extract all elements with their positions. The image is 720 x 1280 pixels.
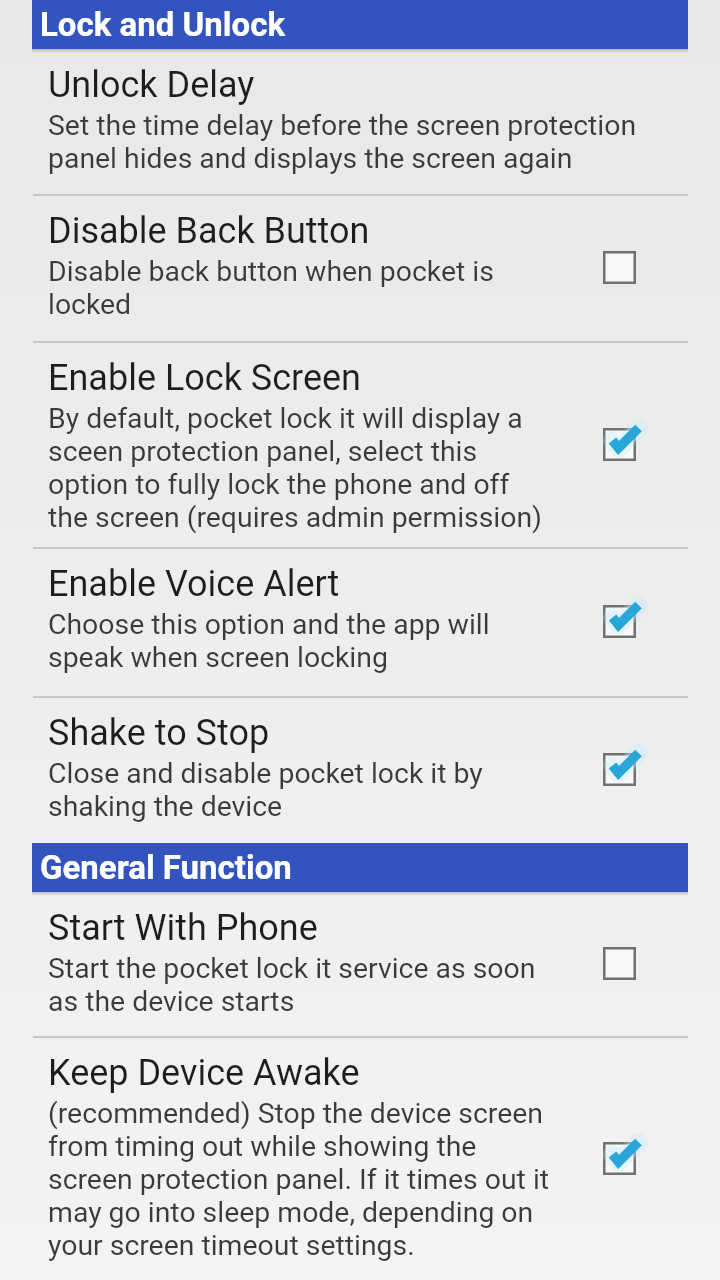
staticText: Set the time delay before the screen pro…	[48, 109, 637, 175]
staticText: Keep Device Awake	[48, 1052, 360, 1094]
button[interactable]	[603, 753, 636, 786]
staticText: Lock and Unlock	[40, 5, 286, 44]
button[interactable]	[603, 947, 636, 980]
staticText: Start the pocket lock it service as soon…	[48, 952, 536, 1018]
staticText: Shake to Stop	[48, 712, 270, 754]
button[interactable]: Unlock Delay	[32, 49, 688, 195]
button[interactable]: Shake to Stop	[32, 697, 688, 843]
button[interactable]: Keep Device Awake	[32, 1037, 688, 1280]
staticText: Disable Back Button	[48, 210, 370, 252]
button[interactable]: Lock and Unlock	[32, 0, 688, 49]
button[interactable]: Start With Phone	[32, 892, 688, 1036]
staticText: General Function	[40, 848, 292, 887]
staticText: Close and disable pocket lock it by shak…	[48, 757, 483, 823]
staticText: Enable Voice Alert	[48, 563, 340, 605]
button[interactable]	[603, 605, 636, 638]
staticText: By default, pocket lock it will display …	[48, 402, 543, 534]
button[interactable]: General Function	[32, 843, 688, 892]
staticText: Start With Phone	[48, 907, 318, 949]
button[interactable]: Enable Lock Screen	[32, 342, 688, 547]
staticText: Disable back button when pocket is locke…	[48, 255, 494, 321]
button[interactable]	[603, 251, 636, 284]
staticText: Enable Lock Screen	[48, 357, 361, 399]
staticText: Unlock Delay	[48, 64, 255, 106]
button[interactable]: Enable Voice Alert	[32, 548, 688, 696]
button[interactable]	[603, 428, 636, 461]
button[interactable]	[603, 1142, 636, 1175]
staticText: Choose this option and the app will spea…	[48, 608, 490, 674]
button[interactable]: Disable Back Button	[32, 195, 688, 341]
staticText: (recommended) Stop the device screen fro…	[48, 1097, 550, 1262]
